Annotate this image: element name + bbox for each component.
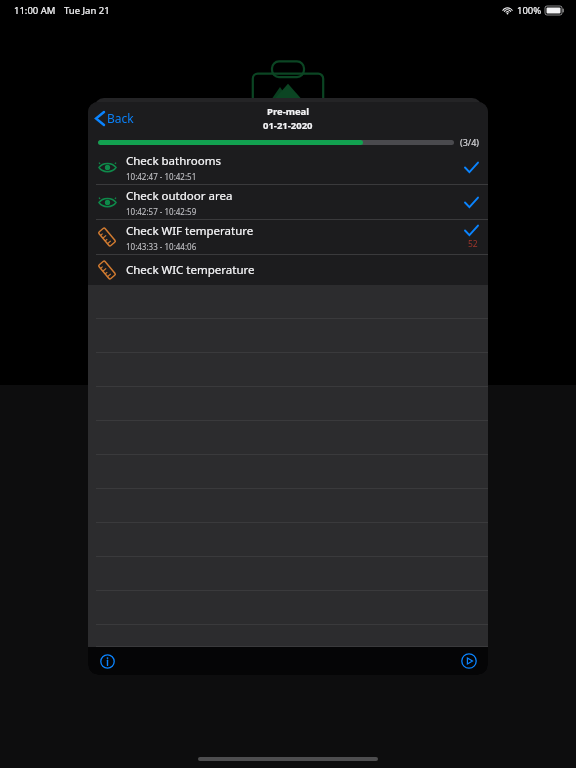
staticText: 10:42:47 - 10:42:51 [126, 171, 197, 182]
staticText: 10:42:57 - 10:42:59 [126, 206, 197, 217]
button[interactable]: Information [96, 650, 118, 672]
staticText: Check WIC temperature [126, 262, 255, 278]
staticText: 100% [517, 4, 542, 17]
button[interactable]: Check bathrooms [88, 150, 488, 184]
staticText: Check outdoor area [126, 188, 233, 204]
staticText: Check bathrooms [126, 153, 221, 169]
button[interactable]: Start [458, 650, 480, 672]
staticText: 11:00 AM [14, 4, 56, 17]
staticText: Tue Jan 21 [64, 4, 110, 17]
staticText: Check WIF temperature [126, 223, 254, 239]
button[interactable]: Check outdoor area [88, 185, 488, 219]
staticText: 52 [468, 238, 478, 250]
staticText: 10:43:33 - 10:44:06 [126, 241, 197, 252]
staticText: (3/4) [460, 136, 480, 148]
button[interactable]: Back [88, 106, 144, 130]
staticText: 01-21-2020 [263, 119, 313, 132]
staticText: Pre-meal [267, 105, 310, 118]
staticText: Back [107, 110, 134, 126]
button[interactable]: Check WIC temperature [88, 255, 488, 285]
button[interactable]: Check WIF temperature [88, 220, 488, 254]
